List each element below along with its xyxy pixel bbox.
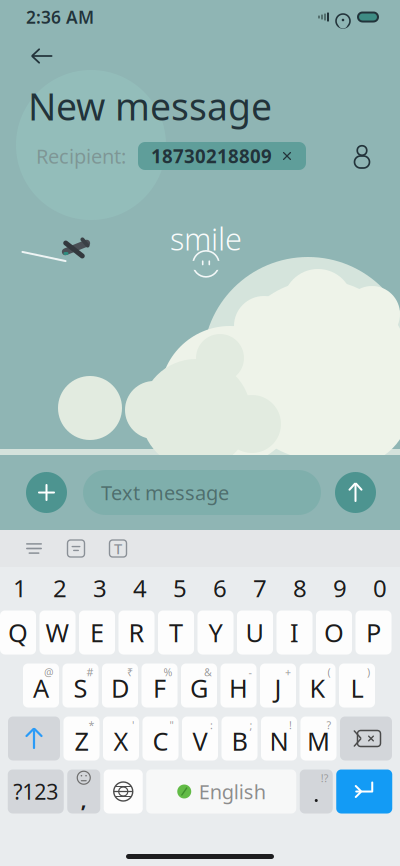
button[interactable]: 8 — [280, 567, 320, 609]
button[interactable]: Period — [300, 769, 333, 813]
staticText: ₹ — [127, 665, 133, 679]
button[interactable]: T — [158, 610, 194, 654]
staticText: % — [163, 665, 172, 679]
staticText: O — [324, 616, 344, 649]
button[interactable]: Emoji and comma — [67, 769, 100, 813]
staticText: W — [45, 616, 69, 649]
staticText: Y — [208, 616, 222, 649]
staticText: C — [152, 724, 168, 758]
staticText: M — [307, 724, 330, 758]
staticText: U — [245, 616, 264, 649]
button[interactable]: @ — [23, 663, 59, 707]
button[interactable]: 6 — [200, 567, 240, 609]
button[interactable]: Switch language — [104, 769, 143, 813]
staticText: * — [88, 718, 94, 732]
button[interactable]: Q — [0, 610, 36, 654]
staticText: ?123 — [13, 777, 58, 806]
button[interactable]: * — [63, 716, 99, 760]
button[interactable]: Enter — [336, 769, 392, 813]
button[interactable]: R — [118, 610, 154, 654]
staticText: 18730218809 — [151, 144, 272, 168]
button[interactable]: 2 — [40, 567, 80, 609]
button[interactable]: & — [181, 663, 217, 707]
staticText: K — [309, 671, 325, 705]
button[interactable]: Back — [20, 36, 64, 76]
staticText: 1 — [13, 572, 27, 604]
staticText: T — [169, 616, 183, 649]
staticText: 4 — [133, 572, 147, 604]
staticText: smile — [170, 218, 242, 259]
staticText: @ — [44, 665, 54, 679]
button[interactable]: 18730218809 — [138, 142, 306, 170]
staticText: !? — [321, 771, 329, 785]
button[interactable]: 4 — [120, 567, 160, 609]
button[interactable]: ! — [261, 716, 297, 760]
staticText: 2:36 AM — [26, 5, 94, 28]
staticText: # — [86, 665, 93, 679]
button[interactable]: 9 — [320, 567, 360, 609]
button[interactable]: 5 — [160, 567, 200, 609]
button[interactable]: + — [260, 663, 296, 707]
staticText: , — [81, 786, 87, 813]
button[interactable]: Send — [335, 472, 376, 513]
staticText: - — [248, 665, 251, 679]
button[interactable]: O — [316, 610, 352, 654]
button[interactable]: 7 — [240, 567, 280, 609]
button[interactable]: Choose contact — [342, 136, 382, 176]
staticText: 5 — [173, 572, 187, 604]
staticText: 9 — [333, 572, 347, 604]
staticText: ) — [367, 665, 370, 679]
button[interactable]: ₹ — [102, 663, 138, 707]
button[interactable]: Add attachment — [26, 472, 67, 513]
staticText: B — [231, 724, 247, 758]
button[interactable]: Shift — [8, 716, 60, 760]
button[interactable]: 0 — [360, 567, 400, 609]
button[interactable]: Y — [197, 610, 233, 654]
button[interactable]: Text formatting — [104, 534, 132, 562]
staticText: 7 — [253, 572, 267, 604]
button[interactable]: ? — [300, 716, 336, 760]
staticText: ' — [132, 718, 134, 732]
staticText: ( — [327, 665, 330, 679]
staticText: Recipient: — [36, 143, 126, 169]
staticText: 8 — [293, 572, 307, 604]
staticText: + — [285, 665, 291, 679]
button[interactable]: - — [220, 663, 256, 707]
staticText: 2 — [53, 572, 67, 604]
button[interactable]: ( — [299, 663, 335, 707]
button[interactable]: Backspace — [340, 716, 392, 760]
button[interactable]: 3 — [80, 567, 120, 609]
button[interactable]: E — [79, 610, 115, 654]
button[interactable]: W — [39, 610, 75, 654]
button[interactable]: ; — [221, 716, 257, 760]
button[interactable]: U — [237, 610, 273, 654]
staticText: G — [190, 671, 208, 705]
staticText: J — [274, 671, 281, 705]
staticText: R — [128, 616, 144, 649]
button[interactable]: 1 — [0, 567, 40, 609]
button[interactable]: Text message — [83, 470, 321, 515]
button[interactable]: % — [141, 663, 177, 707]
staticText: A — [33, 671, 49, 705]
button[interactable]: # — [62, 663, 98, 707]
button[interactable]: ?123 — [8, 769, 64, 813]
staticText: Text message — [101, 479, 229, 506]
staticText: 6 — [213, 572, 227, 604]
button[interactable]: I — [276, 610, 312, 654]
button[interactable]: " — [142, 716, 178, 760]
staticText: " — [169, 718, 173, 732]
button[interactable]: : — [182, 716, 218, 760]
button[interactable]: ' — [103, 716, 139, 760]
button[interactable]: Text shortcuts — [62, 534, 90, 562]
staticText: T — [114, 539, 122, 558]
staticText: New message — [28, 81, 272, 131]
button[interactable]: P — [355, 610, 391, 654]
staticText: E — [90, 616, 104, 649]
button[interactable]: ) — [339, 663, 375, 707]
staticText: H — [229, 671, 248, 705]
button[interactable]: English — [146, 769, 296, 813]
staticText: 3 — [93, 572, 107, 604]
staticText: Q — [8, 616, 28, 649]
staticText: F — [153, 671, 166, 705]
button[interactable]: Clipboard — [20, 534, 48, 562]
